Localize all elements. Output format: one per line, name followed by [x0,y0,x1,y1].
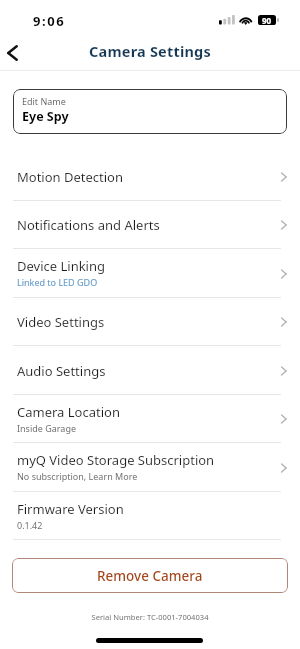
staticText: Device Linking [17,257,105,275]
staticText: Serial Number: TC-0001-7004034 [0,612,300,622]
button[interactable]: Edit Name [13,89,287,134]
button[interactable]: Device Linking [0,249,300,298]
staticText: Eye Spy [22,108,69,125]
staticText: Remove Camera [97,567,203,585]
staticText: Motion Detection [17,168,124,186]
button[interactable]: Camera Location [0,395,300,443]
staticText: Firmware Version [17,500,124,518]
staticText: Notifications and Alerts [17,216,160,234]
button[interactable]: Back [0,36,24,70]
button[interactable]: Video Settings [0,298,300,346]
staticText: Linked to LED GDO [17,276,98,288]
staticText: Video Settings [17,313,105,331]
staticText: 90 [262,15,272,25]
staticText: Edit Name [22,95,66,107]
staticText: No subscription, Learn More [17,470,138,482]
staticText: Camera Settings [0,41,300,61]
staticText: Inside Garage [17,422,76,434]
staticText: myQ Video Storage Subscription [17,451,215,469]
button[interactable]: Audio Settings [0,346,300,395]
staticText: Audio Settings [17,362,106,380]
button[interactable]: Firmware Version [0,492,300,540]
button[interactable]: Remove Camera [12,558,288,593]
staticText: 0.1.42 [17,519,43,531]
button[interactable]: myQ Video Storage Subscription [0,443,300,492]
button[interactable]: Motion Detection [0,153,300,201]
button[interactable]: Notifications and Alerts [0,201,300,249]
staticText: Camera Location [17,403,120,421]
staticText: 9:06 [33,12,66,30]
